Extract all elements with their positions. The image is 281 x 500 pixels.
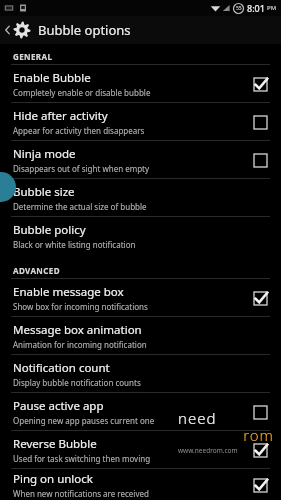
staticText: Determine the actual size of bubble — [13, 201, 147, 212]
staticText: need — [178, 408, 217, 428]
staticText: ADVANCED — [13, 265, 60, 276]
staticText: Ninja mode — [13, 146, 76, 162]
button[interactable]: Ping on unlock — [0, 469, 281, 500]
staticText: 8:01 — [247, 2, 265, 14]
button[interactable]: Message box animation — [0, 317, 281, 354]
staticText: Ping on unlock — [13, 471, 93, 487]
staticText: Bubble size — [13, 184, 75, 200]
staticText: Enable message box — [13, 284, 124, 300]
staticText: Used for task switching then moving — [13, 453, 151, 464]
button[interactable]: Unchecked — [250, 150, 270, 170]
staticText: Reverse Bubble — [13, 436, 97, 452]
button[interactable]: Checked — [250, 440, 270, 460]
button[interactable]: Bubble size — [0, 179, 281, 216]
button[interactable]: Enable Bubble — [0, 65, 281, 102]
staticText: Appear for activity then disappears — [13, 125, 145, 136]
staticText: Bubble policy — [13, 222, 86, 238]
button[interactable]: Checked — [250, 288, 270, 308]
button[interactable]: Notification count — [0, 355, 281, 392]
button[interactable]: Navigate up — [0, 16, 281, 44]
staticText: Display bubble notification counts — [13, 377, 141, 388]
staticText: Animation for incoming notification — [13, 339, 147, 350]
staticText: rom — [178, 425, 274, 445]
staticText: Enable Bubble — [13, 70, 91, 86]
staticText: Pause active app — [13, 398, 104, 414]
staticText: When new notifications are received — [13, 488, 149, 499]
button[interactable]: Checked — [250, 475, 270, 495]
button[interactable]: Enable message box — [0, 279, 281, 316]
button[interactable]: Unchecked — [250, 402, 270, 422]
staticText: PM — [267, 4, 277, 12]
staticText: Bubble options — [38, 21, 131, 39]
button[interactable]: Bubble policy — [0, 217, 281, 254]
button[interactable]: Hide after activity — [0, 103, 281, 140]
staticText: Black or white listing notification — [13, 239, 136, 250]
button[interactable]: Pause active app — [0, 393, 281, 430]
button[interactable]: Ninja mode — [0, 141, 281, 178]
staticText: Completely enable or disable bubble — [13, 87, 151, 98]
staticText: Opening new app pauses current one — [13, 415, 155, 426]
staticText: Disappears out of sight when empty — [13, 163, 150, 174]
button[interactable]: Reverse Bubble — [0, 431, 281, 468]
staticText: 55 — [236, 5, 242, 12]
button[interactable]: Unchecked — [250, 112, 270, 132]
other: Navigate up — [4, 24, 11, 36]
staticText: Message box animation — [13, 322, 142, 338]
staticText: Hide after activity — [13, 108, 108, 124]
staticText: Notification count — [13, 360, 110, 376]
staticText: GENERAL — [13, 51, 53, 62]
button[interactable]: Checked — [250, 74, 270, 94]
staticText: Show box for incoming notifications — [13, 301, 148, 312]
staticText: www.needrom.com — [178, 446, 238, 455]
